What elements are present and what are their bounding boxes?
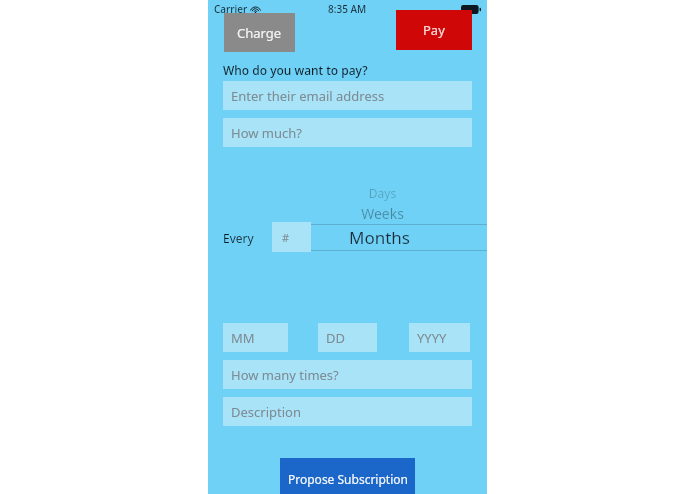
- staticText: Description: [231, 403, 301, 421]
- staticText: DD: [326, 329, 345, 347]
- staticText: #: [282, 230, 290, 245]
- staticText: Months: [349, 226, 410, 249]
- button[interactable]: Months: [272, 225, 487, 250]
- button[interactable]: DD: [318, 323, 377, 352]
- staticText: YYYY: [417, 329, 447, 347]
- button[interactable]: Description: [223, 397, 472, 426]
- button[interactable]: Charge: [224, 13, 295, 52]
- staticText: Charge: [237, 24, 282, 42]
- button[interactable]: Propose Subscription: [280, 458, 415, 494]
- button[interactable]: How much?: [223, 118, 472, 147]
- staticText: How much?: [231, 124, 302, 142]
- staticText: 8:35 AM: [328, 2, 367, 16]
- staticText: Every: [223, 230, 254, 246]
- staticText: Pay: [423, 21, 445, 39]
- staticText: Weeks: [278, 204, 487, 223]
- staticText: MM: [231, 329, 255, 347]
- staticText: Enter their email address: [231, 87, 385, 105]
- button[interactable]: YYYY: [409, 323, 470, 352]
- staticText: Propose Subscription: [288, 471, 408, 487]
- button[interactable]: MM: [223, 323, 288, 352]
- button[interactable]: Enter their email address: [223, 81, 472, 110]
- staticText: Who do you want to pay?: [223, 62, 368, 78]
- staticText: How many times?: [231, 366, 339, 384]
- staticText: Days: [278, 185, 487, 201]
- button[interactable]: #: [272, 222, 311, 252]
- button[interactable]: Pay: [396, 10, 472, 50]
- button[interactable]: How many times?: [223, 360, 472, 389]
- staticText: Carrier: [214, 2, 248, 16]
